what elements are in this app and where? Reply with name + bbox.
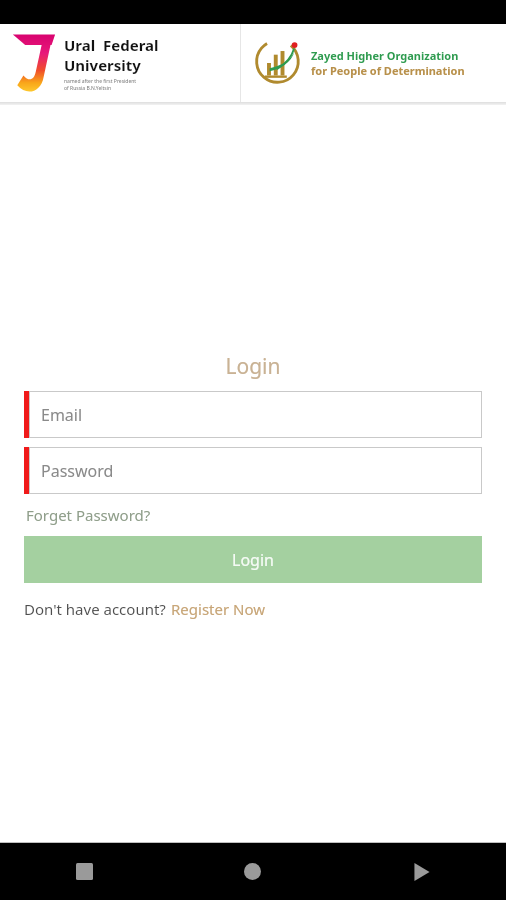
staticText: Forget Password? <box>26 505 151 525</box>
button[interactable]: Email <box>24 391 482 438</box>
button[interactable]: Recent apps <box>0 843 168 900</box>
staticText: Don't have account? <box>24 599 170 619</box>
staticText: of Russia B.N.Yeltsin <box>64 85 112 92</box>
button[interactable]: Password <box>24 447 482 494</box>
staticText: University <box>64 55 141 75</box>
staticText: Password <box>41 460 114 482</box>
staticText: Zayed Higher Organization <box>311 48 459 63</box>
button[interactable]: Back <box>337 843 506 900</box>
button[interactable]: Register Now <box>170 597 267 621</box>
staticText: Login <box>0 352 506 381</box>
staticText: Email <box>41 404 83 426</box>
button[interactable]: Login <box>24 536 482 583</box>
staticText: Register Now <box>171 599 266 619</box>
staticText: for People of Determination <box>311 63 465 78</box>
staticText: Login <box>232 549 274 571</box>
button[interactable]: Home <box>168 843 337 900</box>
staticText: Ural Federal <box>64 35 159 55</box>
staticText: named after the first President <box>64 78 137 85</box>
button[interactable]: Forget Password? <box>24 503 153 527</box>
